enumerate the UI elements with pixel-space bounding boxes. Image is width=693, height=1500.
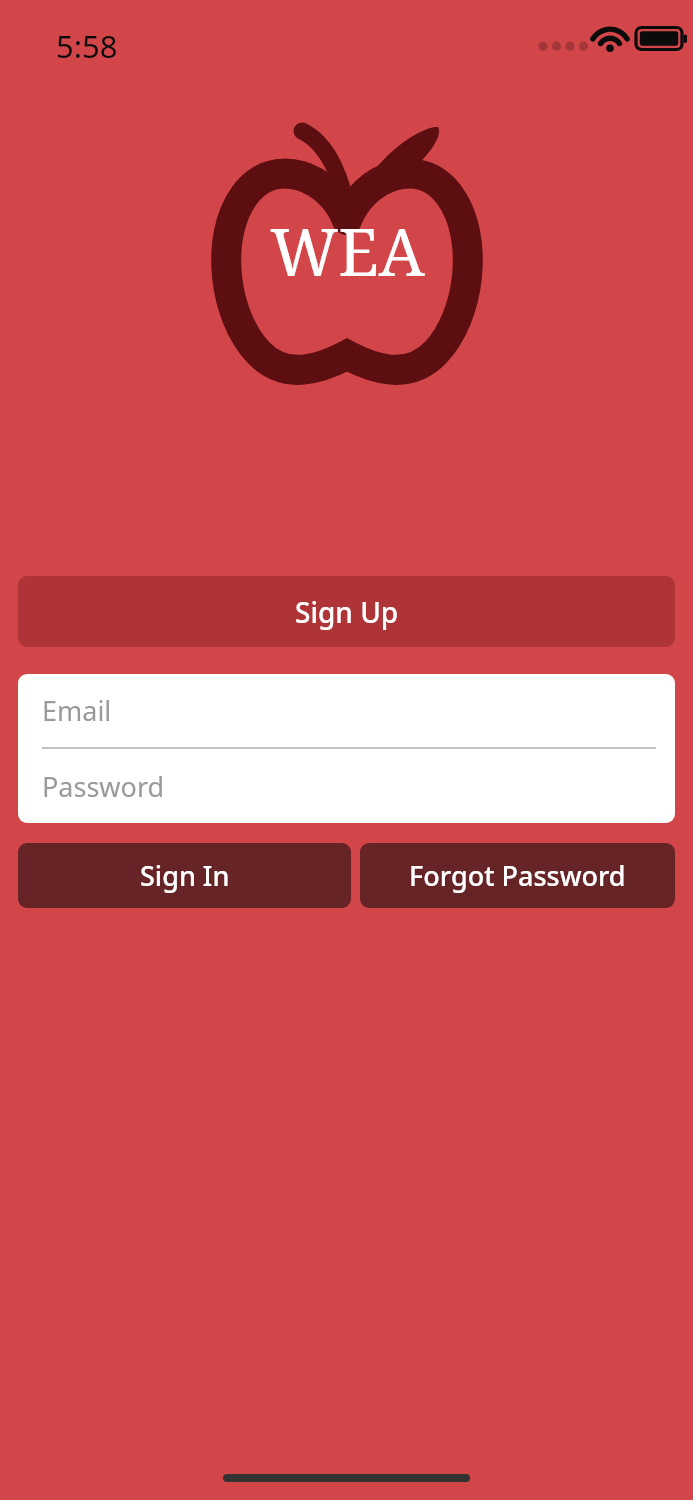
staticText: Sign Up [295, 593, 399, 631]
button[interactable]: Forgot Password [360, 843, 675, 908]
staticText: Email [42, 692, 112, 729]
button[interactable]: Sign In [18, 843, 351, 908]
staticText: WEA [270, 207, 425, 296]
button[interactable]: Password [18, 749, 675, 823]
staticText: Password [42, 768, 165, 805]
button[interactable]: Sign Up [18, 576, 675, 647]
button[interactable]: Email [18, 674, 675, 747]
staticText: Forgot Password [409, 857, 626, 894]
staticText: Sign In [140, 857, 230, 894]
staticText: 5:58 [56, 25, 118, 67]
